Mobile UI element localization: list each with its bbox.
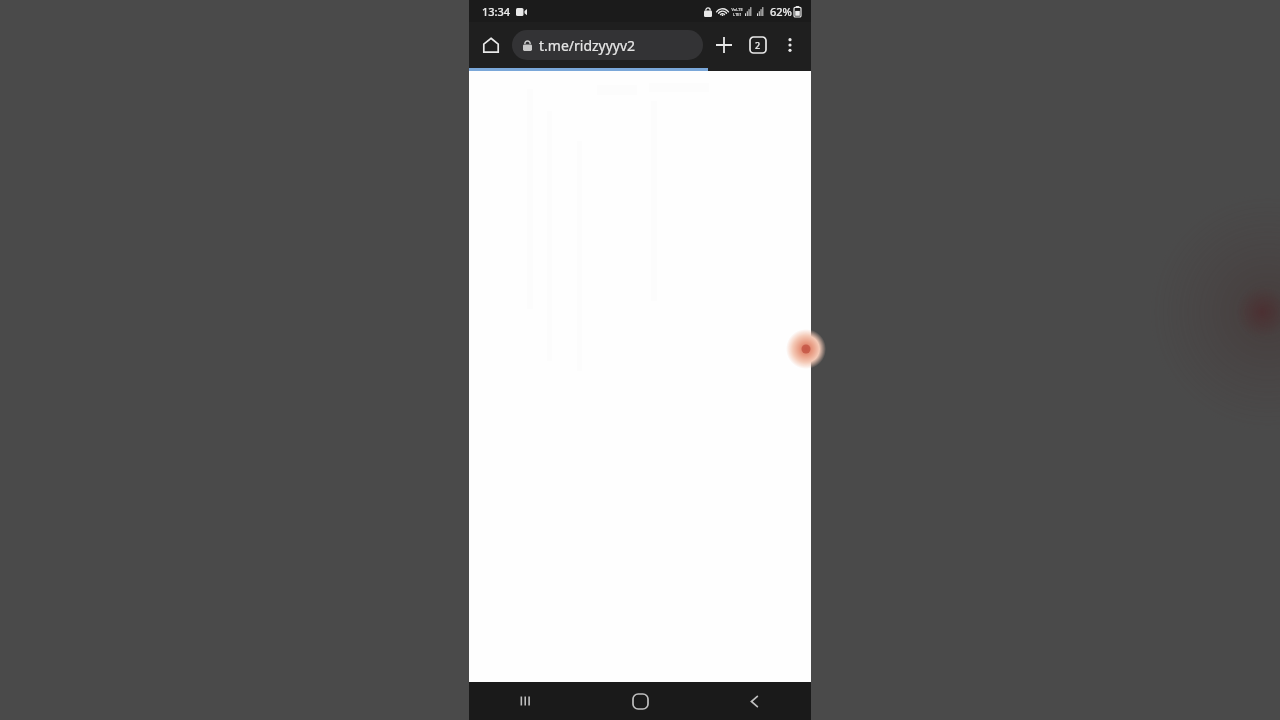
button[interactable]: More options xyxy=(775,30,805,60)
button[interactable]: Tabs, 2 open xyxy=(743,30,773,60)
button[interactable]: New tab xyxy=(709,30,739,60)
button[interactable]: Home xyxy=(583,682,697,720)
staticText: t.me/ridzyyyv2 xyxy=(539,36,636,55)
staticText: VoLTE xyxy=(731,7,743,12)
button[interactable]: Home xyxy=(477,31,505,59)
button[interactable]: Recent apps xyxy=(469,682,583,720)
button[interactable]: Back xyxy=(697,682,811,720)
staticText: 2 xyxy=(755,39,761,51)
button[interactable]: t.me/ridzyyyv2 xyxy=(512,30,703,60)
staticText: LTE1 xyxy=(733,12,742,17)
staticText: 13:34 xyxy=(482,4,511,19)
staticText: 62% xyxy=(770,4,792,19)
